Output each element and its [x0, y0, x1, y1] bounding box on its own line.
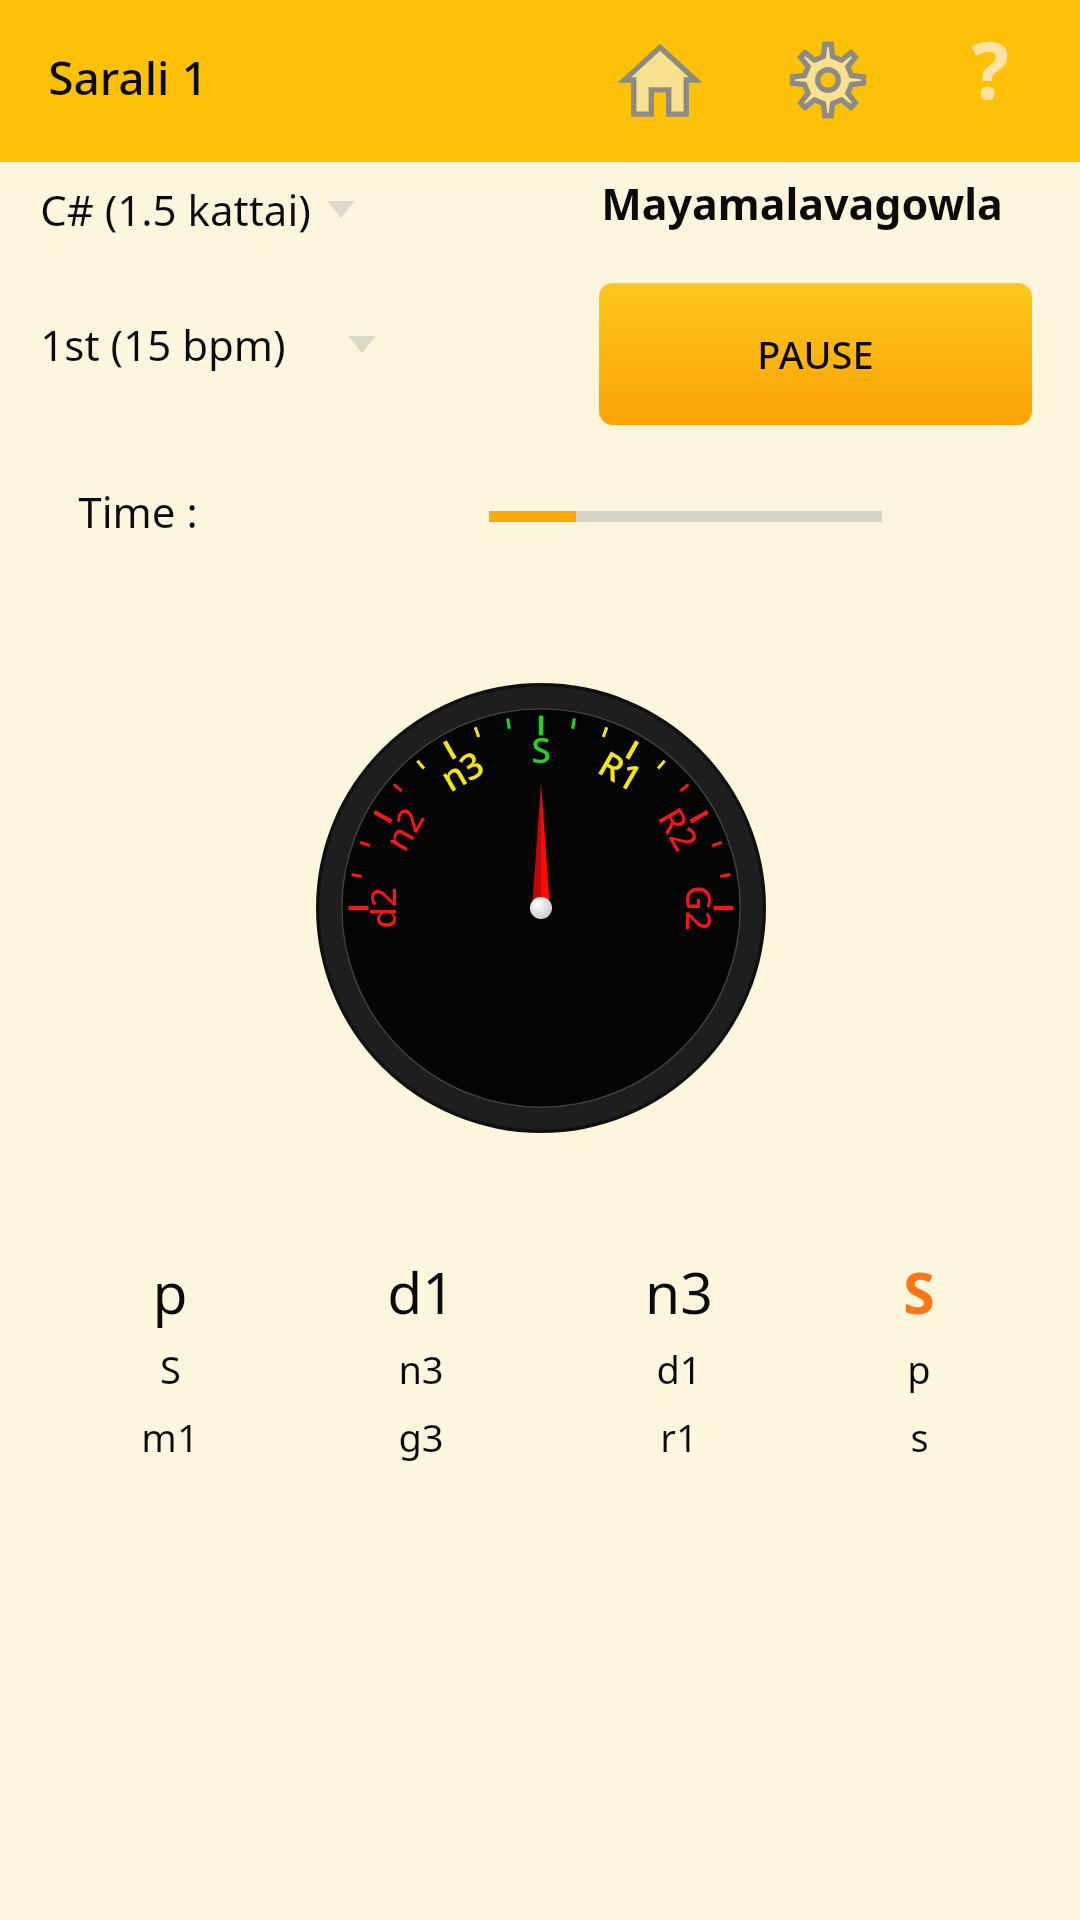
- staticText: S: [531, 726, 551, 774]
- staticText: R2: [647, 798, 710, 860]
- staticText: d2: [359, 887, 407, 929]
- button[interactable]: Home: [608, 28, 712, 132]
- staticText: Time :: [78, 483, 198, 540]
- staticText: n2: [373, 799, 435, 859]
- staticText: Mayamalavagowla: [601, 174, 1003, 233]
- button[interactable]: Settings: [776, 28, 880, 132]
- staticText: g3: [398, 1411, 444, 1463]
- staticText: 1st (15 bpm): [40, 316, 286, 373]
- staticText: PAUSE: [757, 328, 874, 380]
- staticText: r1: [660, 1411, 698, 1463]
- staticText: R1: [590, 739, 651, 803]
- staticText: d1: [656, 1343, 702, 1395]
- staticText: Sarali 1: [48, 46, 208, 109]
- staticText: m1: [141, 1411, 199, 1463]
- button[interactable]: Help: [938, 16, 1042, 120]
- staticText: p: [907, 1343, 931, 1395]
- staticText: S: [903, 1253, 935, 1331]
- staticText: ?: [971, 16, 1009, 120]
- staticText: C# (1.5 kattai): [40, 181, 311, 238]
- button[interactable]: PAUSE: [599, 283, 1032, 425]
- button[interactable]: 1st (15 bpm): [40, 298, 490, 390]
- staticText: G2: [675, 885, 723, 931]
- staticText: n3: [432, 740, 492, 802]
- staticText: p: [152, 1253, 188, 1331]
- staticText: n3: [645, 1253, 713, 1331]
- button[interactable]: C# (1.5 kattai): [40, 163, 470, 255]
- staticText: n3: [398, 1343, 444, 1395]
- staticText: S: [160, 1343, 181, 1395]
- staticText: s: [910, 1411, 929, 1463]
- staticText: d1: [387, 1253, 455, 1331]
